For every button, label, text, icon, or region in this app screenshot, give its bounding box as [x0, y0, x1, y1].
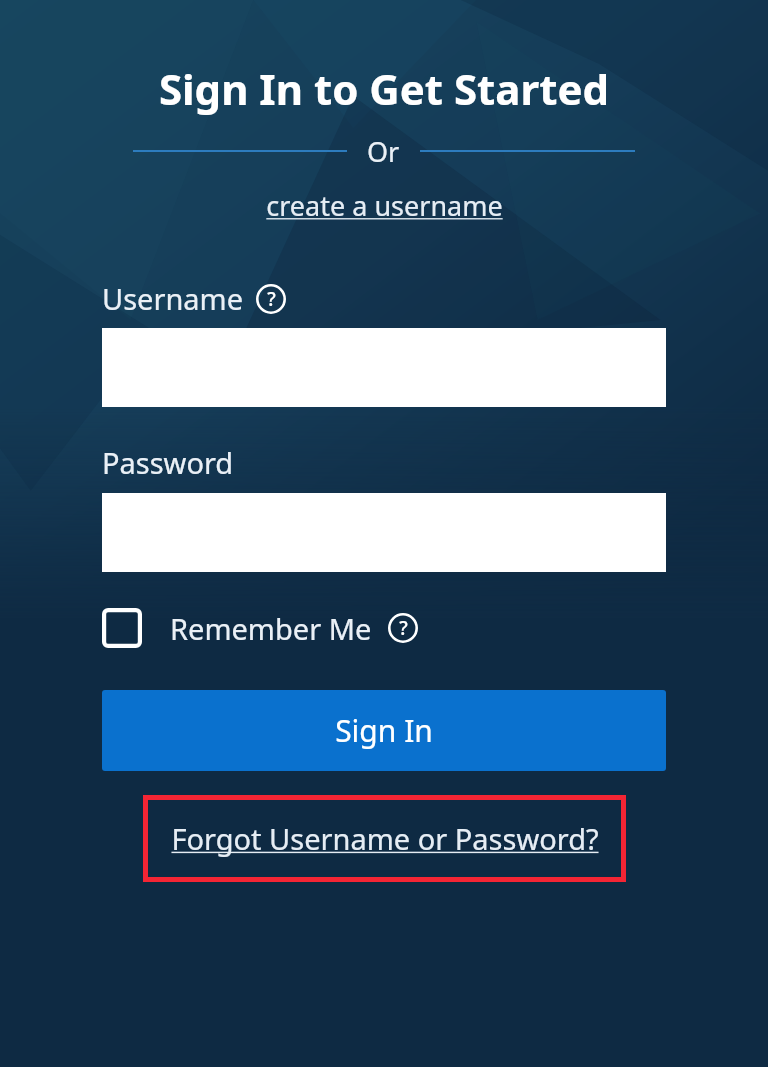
staticText: Username [102, 279, 244, 318]
button[interactable]: Forgot Username or Password? [171, 819, 599, 858]
staticText: Password [102, 443, 234, 482]
button[interactable]: Remember me help [388, 613, 418, 643]
staticText: Sign In [335, 710, 433, 751]
button[interactable]: Sign In [102, 690, 666, 771]
staticText: ? [399, 615, 408, 641]
staticText: Sign In to Get Started [0, 60, 768, 117]
button[interactable]: create a username [266, 187, 503, 224]
staticText: ? [267, 286, 276, 312]
button[interactable]: Remember Me [102, 608, 418, 648]
button[interactable]: Username help [256, 284, 286, 314]
staticText: Remember Me [170, 609, 372, 648]
staticText: Or [367, 133, 400, 170]
